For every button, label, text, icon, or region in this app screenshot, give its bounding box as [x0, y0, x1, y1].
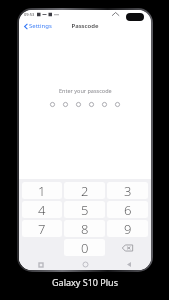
staticText: 1 — [38, 182, 46, 199]
button[interactable]: 3 — [107, 182, 148, 199]
button[interactable]: Delete — [106, 238, 149, 257]
button[interactable]: Recents — [19, 259, 63, 270]
staticText: 0 — [81, 239, 89, 256]
button[interactable]: 9 — [107, 220, 148, 237]
button[interactable]: 4 — [22, 201, 62, 218]
button[interactable]: Settings — [22, 21, 54, 31]
button[interactable]: Home — [63, 259, 107, 270]
staticText: 9 — [124, 220, 132, 237]
staticText: Enter your passcode — [59, 87, 112, 94]
staticText: 09:53 — [24, 12, 35, 17]
button[interactable]: 8 — [64, 220, 105, 237]
staticText: 3 — [124, 182, 132, 199]
staticText: 7 — [38, 220, 46, 237]
button[interactable]: Back — [107, 259, 151, 270]
staticText: 4 — [38, 201, 46, 218]
staticText: Passcode — [71, 22, 99, 30]
staticText: Galaxy S10 Plus — [52, 276, 118, 288]
button[interactable]: 2 — [64, 182, 105, 199]
button[interactable]: 1 — [22, 182, 62, 199]
button[interactable]: 5 — [64, 201, 105, 218]
staticText: 2 — [81, 182, 89, 199]
staticText: 6 — [124, 201, 132, 218]
staticText: Settings — [29, 22, 52, 30]
staticText: 8 — [81, 220, 89, 237]
button[interactable]: 6 — [107, 201, 148, 218]
staticText: 5 — [81, 201, 89, 218]
button[interactable]: 7 — [22, 220, 62, 237]
button[interactable]: 0 — [64, 239, 105, 256]
